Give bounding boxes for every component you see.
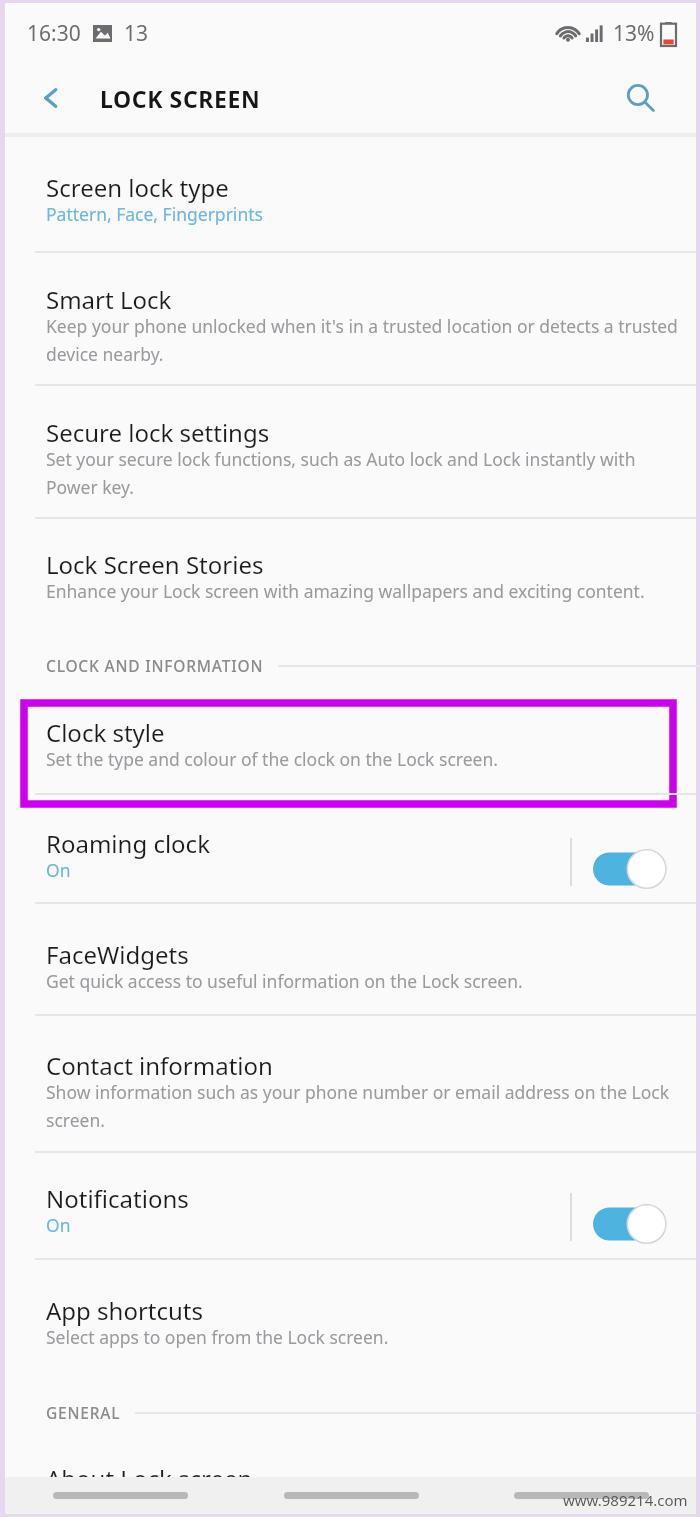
staticText: Select apps to open from the Lock screen… bbox=[46, 1325, 389, 1349]
button[interactable]: Toggle bbox=[591, 846, 675, 892]
staticText: Notifications bbox=[46, 1182, 189, 1215]
staticText: Secure lock settings bbox=[46, 416, 270, 449]
button[interactable]: Back bbox=[27, 74, 75, 122]
button[interactable] bbox=[5, 143, 696, 251]
button[interactable]: Recents bbox=[5, 1477, 236, 1514]
button[interactable]: Home bbox=[236, 1477, 466, 1514]
staticText: Set the type and colour of the clock on … bbox=[46, 747, 498, 771]
staticText: On bbox=[46, 1213, 71, 1237]
staticText: 13% bbox=[613, 19, 655, 48]
staticText: Lock Screen Stories bbox=[46, 548, 264, 581]
button[interactable] bbox=[5, 1158, 696, 1256]
staticText: About Lock screen bbox=[46, 1462, 253, 1495]
staticText: Power key. bbox=[46, 475, 135, 499]
staticText: device nearby. bbox=[46, 342, 164, 366]
button[interactable] bbox=[5, 911, 696, 1011]
button[interactable] bbox=[5, 521, 696, 621]
button[interactable] bbox=[5, 388, 696, 516]
staticText: Pattern, Face, Fingerprints bbox=[46, 202, 263, 226]
staticText: Keep your phone unlocked when it's in a … bbox=[46, 314, 678, 338]
staticText: screen. bbox=[46, 1108, 105, 1132]
staticText: 13 bbox=[124, 19, 149, 48]
staticText: Get quick access to useful information o… bbox=[46, 969, 523, 993]
staticText: Set your secure lock functions, such as … bbox=[46, 447, 636, 471]
button[interactable] bbox=[5, 1267, 696, 1367]
staticText: Roaming clock bbox=[46, 827, 210, 860]
staticText: 16:30 bbox=[27, 19, 81, 48]
staticText: www.989214.com bbox=[563, 1490, 688, 1510]
button[interactable] bbox=[24, 703, 673, 804]
staticText: Enhance your Lock screen with amazing wa… bbox=[46, 579, 645, 603]
staticText: LOCK SCREEN bbox=[100, 83, 261, 114]
button[interactable] bbox=[5, 1437, 696, 1487]
button[interactable] bbox=[5, 1021, 696, 1149]
staticText: GENERAL bbox=[46, 1402, 121, 1423]
staticText: Show information such as your phone numb… bbox=[46, 1080, 670, 1104]
button[interactable] bbox=[5, 803, 696, 901]
button[interactable]: Toggle bbox=[591, 1201, 675, 1247]
staticText: CLOCK AND INFORMATION bbox=[46, 655, 264, 676]
staticText: On bbox=[46, 858, 71, 882]
staticText: Clock style bbox=[46, 716, 165, 749]
button[interactable]: Search bbox=[616, 74, 664, 122]
staticText: Contact information bbox=[46, 1049, 273, 1082]
staticText: App shortcuts bbox=[46, 1294, 204, 1327]
staticText: Screen lock type bbox=[46, 171, 229, 204]
staticText: Smart Lock bbox=[46, 283, 172, 316]
button[interactable] bbox=[5, 255, 696, 383]
staticText: FaceWidgets bbox=[46, 938, 189, 971]
button[interactable]: Back bbox=[466, 1477, 696, 1514]
